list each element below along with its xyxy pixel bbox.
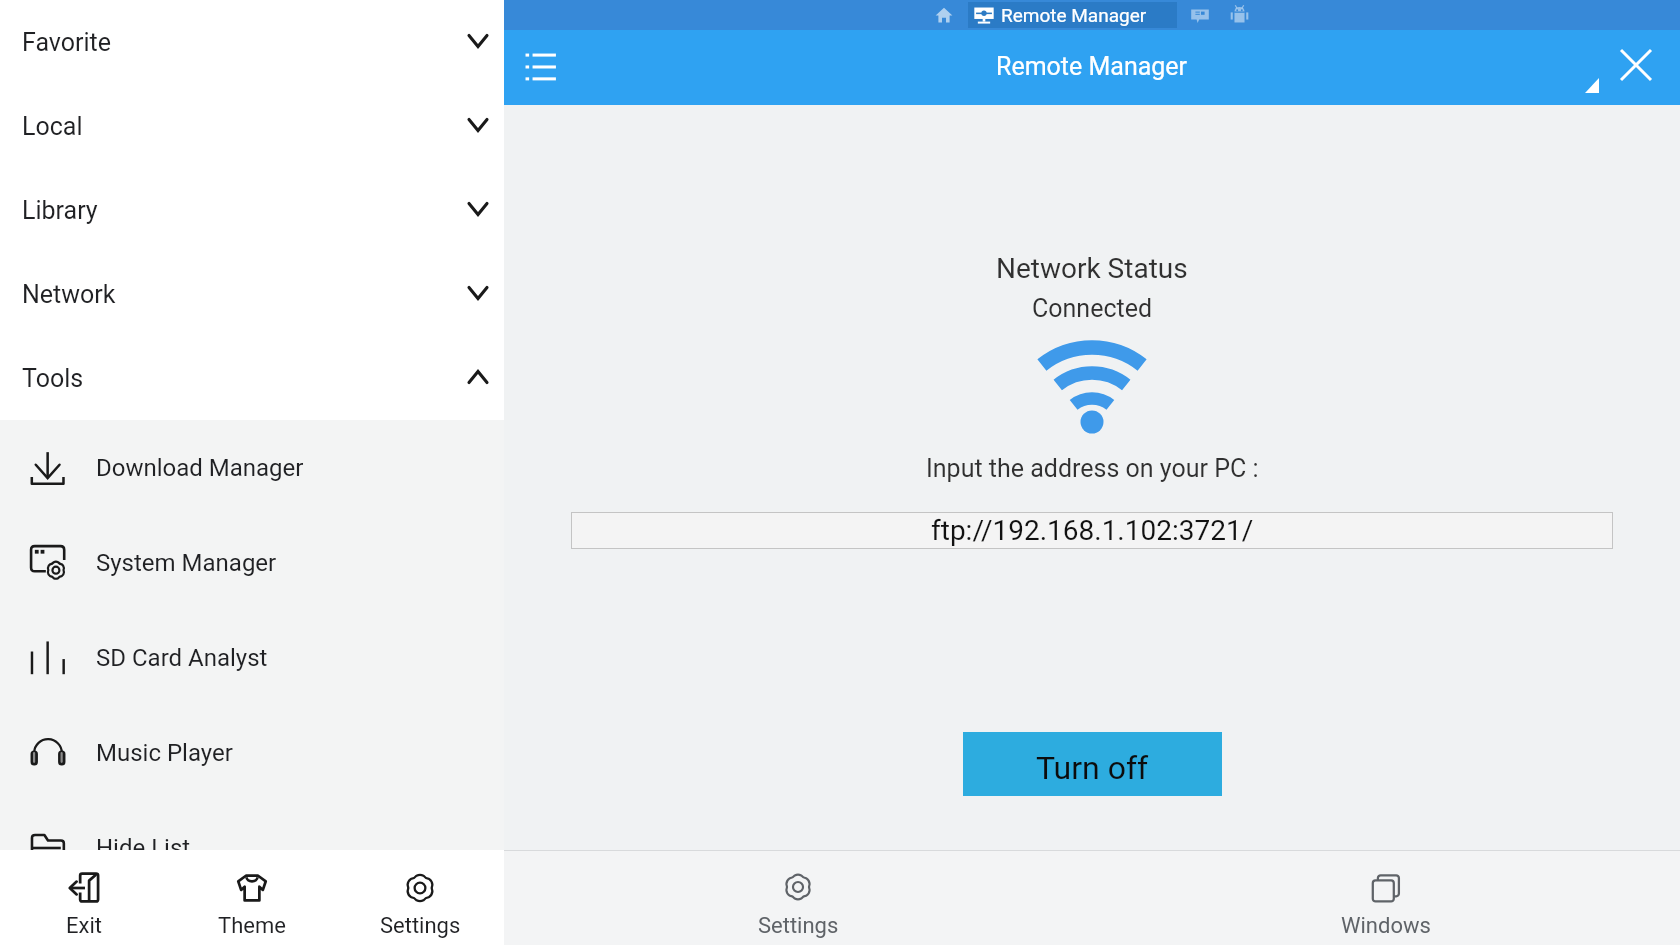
button[interactable]: SD Card Analyst — [0, 610, 504, 705]
button[interactable]: Exit — [0, 850, 168, 945]
staticText: SD Card Analyst — [96, 644, 268, 672]
button[interactable]: Turn off — [963, 732, 1222, 796]
staticText: Settings — [758, 913, 839, 939]
button[interactable]: Hide List — [0, 800, 504, 895]
button[interactable]: Library — [0, 168, 504, 252]
button[interactable]: Network — [0, 252, 504, 336]
staticText: Exit — [66, 913, 102, 939]
staticText: Music Player — [96, 739, 233, 767]
button[interactable]: Menu — [512, 37, 574, 99]
button[interactable]: Settings — [336, 850, 504, 945]
button[interactable]: Theme — [168, 850, 336, 945]
staticText: Tools — [22, 364, 84, 393]
staticText: Network Status — [996, 252, 1188, 285]
staticText: Theme — [218, 913, 286, 939]
staticText: Download Manager — [96, 454, 304, 482]
button[interactable]: System Manager — [0, 515, 504, 610]
button[interactable]: Tools — [0, 336, 504, 420]
button[interactable]: Favorite — [0, 0, 504, 84]
staticText: ftp://192.168.1.102:3721/ — [931, 514, 1254, 547]
staticText: Windows — [1341, 913, 1431, 939]
button[interactable]: Local — [0, 84, 504, 168]
staticText: Turn off — [1036, 749, 1149, 787]
staticText: Library — [22, 196, 98, 225]
staticText: Local — [22, 112, 83, 141]
staticText: Network — [22, 280, 116, 309]
button[interactable]: SD card manager — [1190, 5, 1210, 25]
button[interactable]: Remote Manager — [968, 2, 1177, 28]
button[interactable]: Windows — [1092, 850, 1680, 945]
button[interactable]: Music Player — [0, 705, 504, 800]
staticText: Remote Manager — [1001, 4, 1147, 26]
staticText: System Manager — [96, 549, 277, 577]
button[interactable]: Home — [934, 5, 954, 25]
staticText: Hide List — [96, 834, 191, 862]
staticText: Connected — [1032, 294, 1153, 323]
staticText: Input the address on your PC : — [926, 454, 1259, 483]
staticText: Settings — [380, 913, 461, 939]
staticText: Remote Manager — [996, 52, 1188, 81]
button[interactable]: App manager — [1229, 4, 1250, 25]
button[interactable]: Download Manager — [0, 420, 504, 515]
staticText: Favorite — [22, 28, 111, 57]
button[interactable]: Settings — [504, 850, 1092, 945]
button[interactable]: Close — [1607, 36, 1665, 94]
